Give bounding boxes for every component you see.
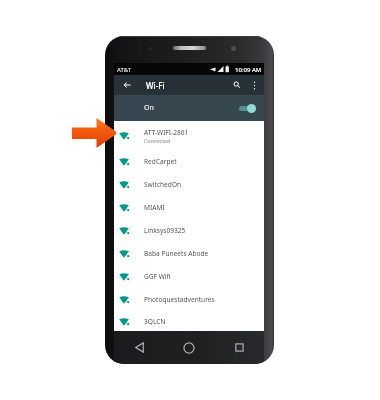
button[interactable]: SwitchedOn xyxy=(114,173,264,196)
button[interactable]: Linksys09325 xyxy=(114,219,264,242)
staticText: SwitchedOn xyxy=(144,180,182,189)
button[interactable]: GGF Wifi xyxy=(114,265,264,288)
button[interactable]: Back xyxy=(114,331,164,364)
staticText: GGF Wifi xyxy=(144,272,171,281)
button[interactable]: Baba Puneets Abode xyxy=(114,242,264,265)
button[interactable]: RedCarpet xyxy=(114,150,264,173)
button[interactable]: ATT-WIFI-2861 xyxy=(114,121,264,150)
staticText: Connected xyxy=(144,137,171,144)
staticText: Linksys09325 xyxy=(144,226,186,235)
button[interactable]: Recent apps xyxy=(214,331,264,364)
button[interactable]: Home xyxy=(164,331,214,364)
staticText: RedCarpet xyxy=(144,157,177,166)
button[interactable]: More options xyxy=(247,78,261,92)
staticText: MIAMI xyxy=(144,203,165,212)
staticText: 10:09 AM xyxy=(235,66,262,74)
button[interactable]: Navigate up xyxy=(119,77,135,93)
button[interactable]: Photoquestadventures xyxy=(114,288,264,311)
staticText: On xyxy=(144,103,154,113)
button[interactable]: 3QLCN xyxy=(114,311,264,331)
button[interactable]: On xyxy=(114,95,264,121)
staticText: Baba Puneets Abode xyxy=(144,249,209,258)
staticText: Photoquestadventures xyxy=(144,295,215,304)
button[interactable]: Search xyxy=(229,77,245,93)
staticText: 3QLCN xyxy=(144,317,166,326)
staticText: AT&T xyxy=(117,66,132,74)
staticText: Wi-Fi xyxy=(146,80,165,91)
button[interactable]: MIAMI xyxy=(114,196,264,219)
staticText: ATT-WIFI-2861 xyxy=(144,128,189,137)
